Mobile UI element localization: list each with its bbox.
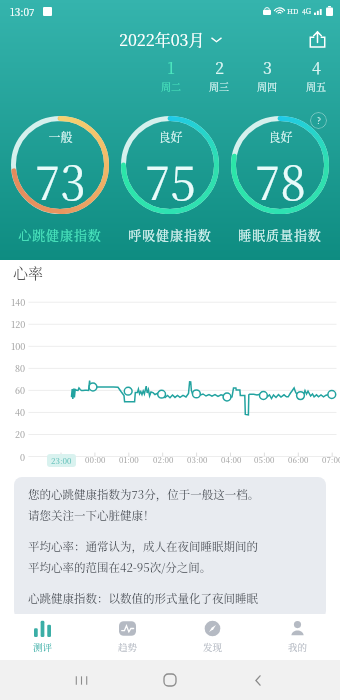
button[interactable]: 2 [197,56,241,93]
staticText: 20 [15,428,26,441]
staticText: 140 [11,296,26,309]
staticText: 2022年03月 [119,28,205,51]
staticText: 一般 [48,128,73,145]
staticText: 呼吸健康指数 [128,225,212,244]
staticText: 1 [167,56,175,79]
staticText: 发现 [203,640,223,654]
staticText: 测评 [33,640,53,654]
button[interactable]: 4 [294,56,338,93]
staticText: 睡眠质量指数 [238,225,322,244]
staticText: 心跳健康指数 [18,225,102,244]
staticText: 周二 [161,79,181,93]
staticText: 07:00 [322,454,340,465]
staticText: 3 [263,56,272,79]
staticText: 周三 [209,79,229,93]
staticText: 心率 [13,262,44,284]
staticText: HD [287,6,299,16]
staticText: 120 [11,318,26,331]
staticText: 0 [20,451,26,464]
staticText: 良好 [158,128,183,145]
button[interactable]: 1 [149,56,193,93]
staticText: 06:00 [288,454,309,465]
staticText: 周四 [257,79,277,93]
staticText: 40 [15,406,26,419]
button[interactable]: 3 [245,56,289,93]
staticText: 73 [35,147,86,213]
staticText: 良好 [268,128,293,145]
staticText: 周五 [306,79,326,93]
button[interactable]: 我的 [255,614,340,660]
staticText: 04:00 [221,454,242,465]
button[interactable]: Share [302,24,332,54]
staticText: 心跳健康指数：以数值的形式量化了夜间睡眠 [28,590,258,607]
staticText: 23:00 [51,455,72,466]
staticText: 80 [15,362,26,375]
button[interactable]: 您的心跳健康指数为73分，位于一般这一档。 [14,477,326,619]
staticText: 我的 [288,640,308,654]
staticText: 请您关注一下心脏健康！ [28,507,155,524]
staticText: 00:00 [85,454,106,465]
staticText: ? [317,114,321,127]
staticText: 01:00 [119,454,139,465]
button[interactable]: 测评 [0,614,85,660]
staticText: 75 [145,147,196,213]
staticText: 02:00 [153,454,174,465]
staticText: 2 [215,56,224,79]
staticText: 4 [312,56,321,79]
staticText: 05:00 [254,454,275,465]
button[interactable]: 2022年03月 [115,26,226,53]
staticText: 03:00 [187,454,208,465]
staticText: 您的心跳健康指数为73分，位于一般这一档。 [28,486,260,503]
staticText: 100 [11,340,26,353]
staticText: 平均心率：通常认为，成人在夜间睡眠期间的 [28,538,258,555]
staticText: 13:07 [10,4,35,18]
staticText: 60 [15,384,26,397]
button[interactable]: Help [310,112,327,129]
staticText: 平均心率的范围在42-95次/分之间。 [28,559,212,576]
staticText: 4G [302,6,312,16]
button[interactable]: 发现 [170,614,255,660]
staticText: 78 [255,147,306,213]
button[interactable]: 趋势 [85,614,170,660]
staticText: 趋势 [118,640,138,654]
